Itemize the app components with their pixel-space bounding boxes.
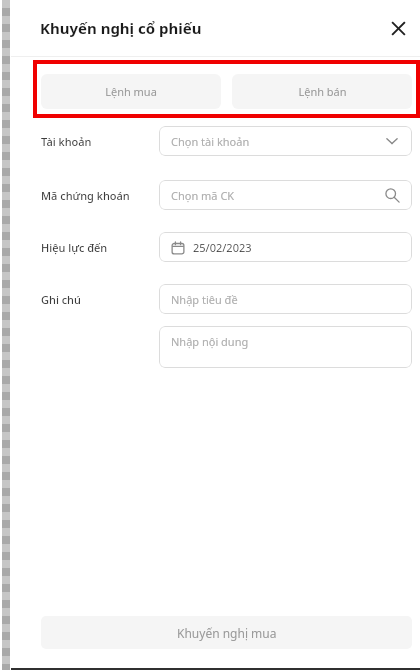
button[interactable]: Nhập nội dung	[159, 326, 412, 368]
staticText: Hiệu lực đến	[41, 240, 108, 255]
button[interactable]: Nhập tiêu đề	[159, 284, 412, 314]
staticText: Ghi chú	[41, 292, 81, 307]
staticText: Lệnh bán	[298, 84, 347, 99]
staticText: Tài khoản	[41, 134, 92, 149]
staticText: 25/02/2023	[193, 240, 252, 255]
staticText: Khuyến nghị mua	[177, 625, 277, 641]
button[interactable]: Lệnh bán	[232, 74, 412, 109]
button[interactable]: Lệnh mua	[41, 74, 221, 109]
button[interactable]: Đóng	[381, 11, 415, 45]
staticText: Khuyến nghị cổ phiếu	[40, 18, 202, 38]
button[interactable]: Chọn tài khoản	[159, 126, 412, 156]
staticText: Mã chứng khoán	[41, 188, 130, 203]
staticText: Chọn tài khoản	[171, 134, 250, 149]
button[interactable]: 25/02/2023	[159, 232, 412, 262]
staticText: Lệnh mua	[105, 84, 157, 99]
button[interactable]: Chọn mã CK	[159, 180, 412, 210]
staticText: Nhập tiêu đề	[171, 292, 238, 307]
staticText: Chọn mã CK	[171, 188, 235, 203]
button[interactable]: Khuyến nghị mua	[41, 616, 412, 649]
staticText: Nhập nội dung	[171, 334, 249, 349]
